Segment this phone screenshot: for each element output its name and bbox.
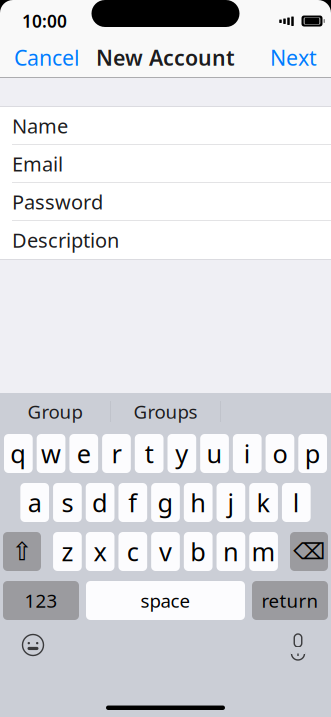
staticText: l: [293, 486, 300, 519]
staticText: Next: [270, 43, 317, 72]
staticText: f: [128, 486, 137, 519]
staticText: Group: [27, 399, 82, 424]
staticText: Password: [12, 188, 103, 215]
button[interactable]: i: [233, 434, 262, 473]
staticText: space: [140, 588, 190, 613]
staticText: Name: [12, 112, 68, 139]
staticText: 10:00: [22, 9, 67, 32]
button[interactable]: u: [200, 434, 229, 473]
button[interactable]: Delete: [290, 532, 328, 571]
button[interactable]: 123: [3, 581, 79, 620]
button[interactable]: Email: [0, 145, 331, 183]
button[interactable]: m: [249, 532, 278, 571]
button[interactable]: q: [4, 434, 33, 473]
button[interactable]: Password: [0, 183, 331, 221]
staticText: d: [92, 486, 108, 519]
staticText: 123: [24, 588, 57, 613]
button[interactable]: space: [86, 581, 245, 620]
button[interactable]: v: [151, 532, 180, 571]
button[interactable]: g: [151, 483, 180, 522]
button[interactable]: Groups: [110, 393, 220, 430]
button[interactable]: p: [298, 434, 327, 473]
staticText: return: [261, 588, 318, 613]
staticText: ⇧: [11, 537, 32, 566]
staticText: m: [252, 535, 276, 568]
button[interactable]: y: [167, 434, 196, 473]
staticText: Description: [12, 227, 119, 253]
staticText: v: [159, 535, 172, 568]
button[interactable]: n: [217, 532, 245, 571]
button[interactable]: Description: [0, 221, 331, 259]
staticText: z: [61, 535, 73, 568]
button[interactable]: a: [20, 483, 49, 522]
staticText: k: [257, 486, 271, 519]
button[interactable]: b: [184, 532, 213, 571]
staticText: c: [127, 535, 139, 568]
staticText: b: [190, 535, 206, 568]
button[interactable]: o: [266, 434, 294, 473]
staticText: q: [10, 437, 26, 470]
button[interactable]: Name: [0, 107, 331, 145]
button[interactable]: Next: [256, 37, 331, 77]
button[interactable]: Cancel: [0, 37, 94, 77]
staticText: u: [207, 437, 223, 470]
button[interactable]: r: [102, 434, 131, 473]
staticText: o: [272, 437, 287, 470]
staticText: j: [227, 486, 234, 519]
button[interactable]: c: [118, 532, 147, 571]
button[interactable]: s: [53, 483, 82, 522]
staticText: Cancel: [14, 43, 80, 72]
staticText: Email: [12, 150, 63, 177]
button[interactable]: Group: [0, 393, 110, 430]
staticText: p: [305, 437, 321, 470]
button[interactable]: k: [249, 483, 278, 522]
staticText: n: [223, 535, 239, 568]
staticText: y: [175, 437, 188, 470]
staticText: e: [77, 437, 91, 470]
staticText: New Account: [96, 43, 235, 72]
button[interactable]: return: [252, 581, 328, 620]
button[interactable]: w: [37, 434, 65, 473]
staticText: t: [145, 437, 154, 470]
staticText: ⌫: [293, 539, 325, 564]
button[interactable]: x: [86, 532, 114, 571]
button[interactable]: h: [184, 483, 213, 522]
button[interactable]: Shift: [3, 532, 41, 571]
staticText: r: [111, 437, 121, 470]
staticText: w: [41, 437, 61, 470]
staticText: x: [94, 535, 107, 568]
staticText: a: [28, 486, 42, 519]
button[interactable]: d: [86, 483, 114, 522]
button[interactable]: Dictate: [278, 628, 318, 662]
button[interactable]: l: [282, 483, 311, 522]
button[interactable]: Emoji: [13, 628, 53, 662]
button[interactable]: f: [118, 483, 147, 522]
staticText: Groups: [133, 399, 197, 424]
staticText: i: [244, 437, 251, 470]
button[interactable]: e: [69, 434, 98, 473]
staticText: g: [157, 486, 173, 519]
button[interactable]: j: [217, 483, 245, 522]
staticText: s: [61, 486, 73, 519]
staticText: h: [190, 486, 206, 519]
button[interactable]: t: [135, 434, 163, 473]
button[interactable]: z: [53, 532, 82, 571]
